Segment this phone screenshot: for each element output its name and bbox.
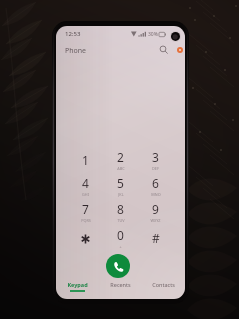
- button[interactable]: 9: [138, 199, 173, 225]
- button[interactable]: 5: [103, 173, 138, 199]
- staticText: +: [119, 244, 122, 249]
- button[interactable]: Keypad: [56, 281, 99, 292]
- button[interactable]: Call: [106, 254, 130, 278]
- staticText: ABC: [117, 166, 125, 171]
- button[interactable]: 7: [68, 199, 103, 225]
- button[interactable]: *: [68, 225, 103, 251]
- button[interactable]: 1: [68, 147, 103, 173]
- staticText: Phone: [65, 46, 87, 56]
- staticText: 0: [117, 227, 124, 243]
- staticText: 7: [82, 201, 89, 217]
- button[interactable]: 0: [103, 225, 138, 251]
- staticText: 4: [82, 175, 89, 191]
- staticText: 30%: [148, 31, 158, 38]
- staticText: 12:53: [65, 30, 81, 38]
- button[interactable]: 8: [103, 199, 138, 225]
- staticText: Recents: [110, 281, 131, 288]
- staticText: MNO: [151, 192, 161, 197]
- staticText: JKL: [118, 192, 124, 197]
- button[interactable]: Contacts: [142, 281, 185, 288]
- staticText: 9: [152, 201, 159, 217]
- button[interactable]: Recents: [99, 281, 142, 288]
- button[interactable]: Search: [157, 43, 171, 57]
- staticText: GHI: [82, 192, 89, 197]
- button[interactable]: 2: [103, 147, 138, 173]
- staticText: 2: [117, 149, 124, 165]
- button[interactable]: More options: [173, 43, 185, 57]
- staticText: 6: [152, 175, 159, 191]
- button[interactable]: 3: [138, 147, 173, 173]
- staticText: 5: [117, 175, 124, 191]
- button[interactable]: 4: [68, 173, 103, 199]
- button[interactable]: 6: [138, 173, 173, 199]
- staticText: 1: [82, 152, 89, 168]
- staticText: 3: [152, 149, 159, 165]
- staticText: Contacts: [152, 281, 175, 288]
- staticText: TUV: [117, 218, 125, 223]
- staticText: WXYZ: [150, 218, 161, 223]
- staticText: #: [152, 230, 160, 246]
- staticText: DEF: [152, 166, 159, 171]
- button[interactable]: #: [138, 225, 173, 251]
- staticText: PQRS: [81, 218, 91, 223]
- staticText: 8: [117, 201, 124, 217]
- staticText: Keypad: [67, 281, 88, 288]
